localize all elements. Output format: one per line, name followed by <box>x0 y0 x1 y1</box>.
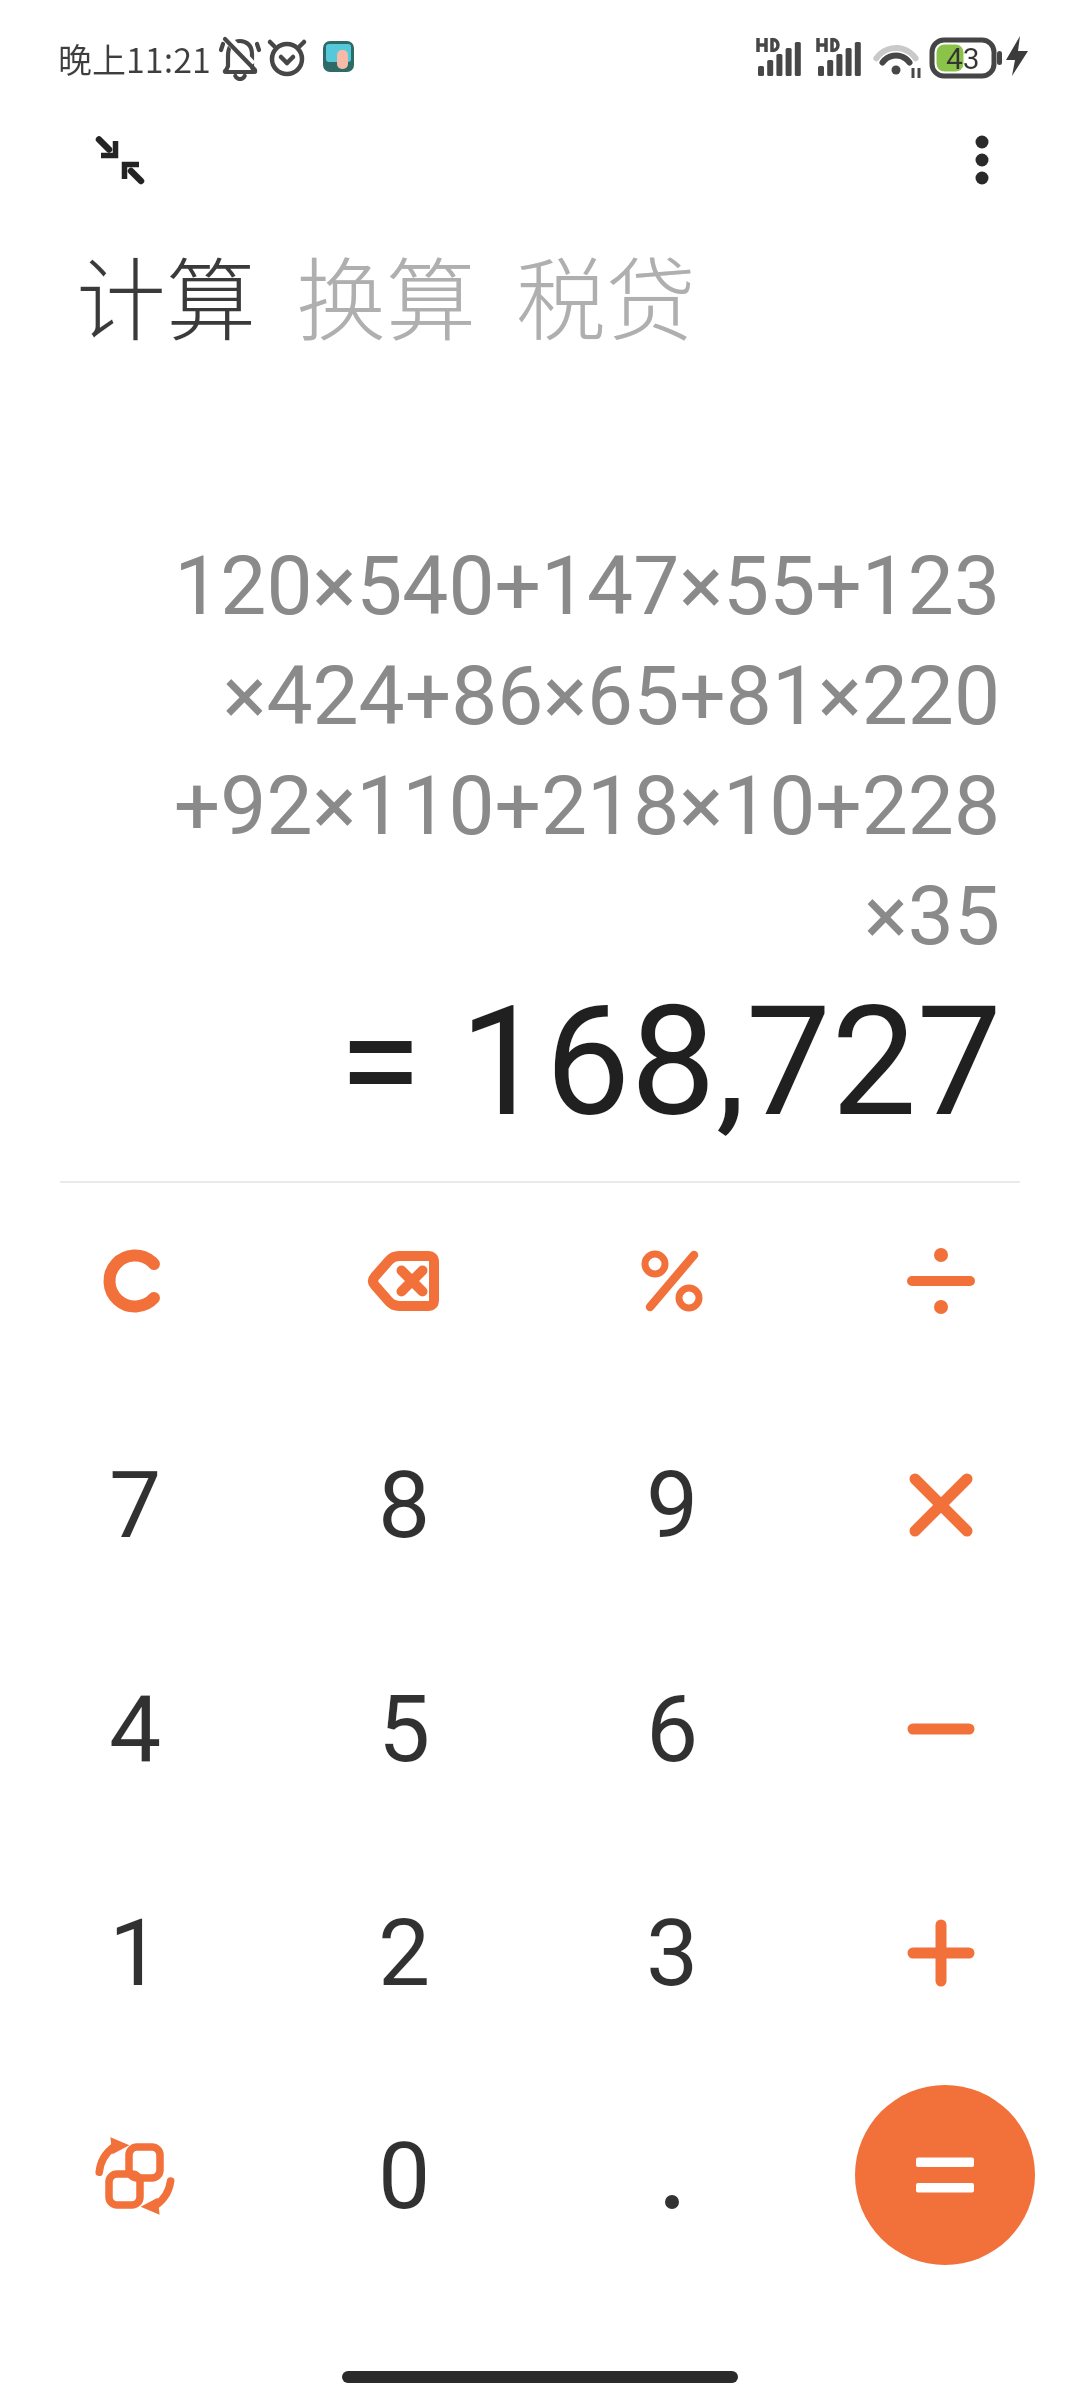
button[interactable]: 5 <box>294 1634 514 1824</box>
button[interactable] <box>831 1410 1051 1600</box>
staticText: 0 <box>378 2122 431 2231</box>
button[interactable]: 4 <box>25 1634 245 1824</box>
staticText: 2 <box>378 1899 431 2008</box>
button[interactable] <box>25 1186 245 1376</box>
button[interactable] <box>831 1186 1051 1376</box>
staticText: 3 <box>646 1899 699 2008</box>
button[interactable] <box>25 2081 245 2271</box>
button[interactable] <box>76 116 164 204</box>
staticText: 6 <box>646 1675 699 1784</box>
staticText: 税贷 <box>516 229 696 359</box>
button[interactable]: 计算 <box>76 229 256 359</box>
staticText: 4 <box>109 1675 162 1784</box>
button[interactable] <box>294 1186 514 1376</box>
button[interactable] <box>831 1634 1051 1824</box>
staticText: 7 <box>109 1451 162 1560</box>
button[interactable]: 9 <box>562 1410 782 1600</box>
staticText: = 168,727 <box>0 973 1002 1151</box>
button[interactable]: 税贷 <box>516 229 696 359</box>
button[interactable]: 2 <box>294 1858 514 2048</box>
button[interactable] <box>562 2081 782 2271</box>
button[interactable] <box>938 116 1026 204</box>
button[interactable]: 换算 <box>296 229 476 359</box>
button[interactable] <box>562 1186 782 1376</box>
button[interactable]: 0 <box>294 2081 514 2271</box>
button[interactable]: 7 <box>25 1410 245 1600</box>
staticText: 1 <box>109 1899 162 2008</box>
staticText: 换算 <box>296 229 476 359</box>
staticText: 5 <box>378 1675 431 1784</box>
button[interactable] <box>831 1858 1051 2048</box>
staticText: 120×540+147×55+123 ×424+86×65+81×220 +92… <box>0 538 1000 964</box>
staticText: 计算 <box>76 229 256 359</box>
button[interactable]: 8 <box>294 1410 514 1600</box>
button[interactable]: 6 <box>562 1634 782 1824</box>
button[interactable]: 3 <box>562 1858 782 2048</box>
staticText: 9 <box>646 1451 699 1560</box>
staticText: 晚上11:21 <box>58 34 211 83</box>
button[interactable]: 1 <box>25 1858 245 2048</box>
staticText: 43 <box>946 41 980 76</box>
staticText: 8 <box>378 1451 431 1560</box>
button[interactable] <box>855 2085 1035 2265</box>
